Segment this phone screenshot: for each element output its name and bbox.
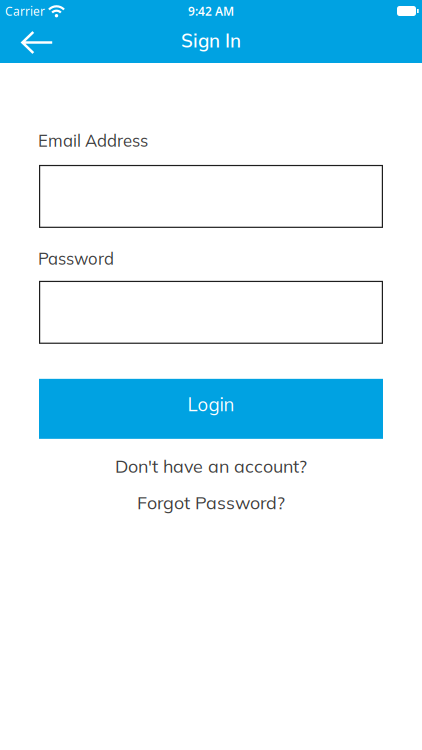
button[interactable]: Login xyxy=(39,379,383,439)
button[interactable]: Don't have an account? xyxy=(115,455,307,477)
staticText: 9:42 AM xyxy=(188,3,234,19)
button[interactable] xyxy=(0,31,53,54)
staticText: Carrier xyxy=(5,3,45,19)
staticText: Password xyxy=(38,248,114,269)
staticText: Email Address xyxy=(38,130,148,151)
button[interactable]: Forgot Password? xyxy=(137,491,285,514)
staticText: Don't have an account? xyxy=(115,455,307,477)
staticText: Forgot Password? xyxy=(137,491,285,514)
button[interactable] xyxy=(39,281,383,344)
staticText: Login xyxy=(187,393,234,416)
staticText: Sign In xyxy=(181,29,241,52)
button[interactable] xyxy=(39,165,383,228)
